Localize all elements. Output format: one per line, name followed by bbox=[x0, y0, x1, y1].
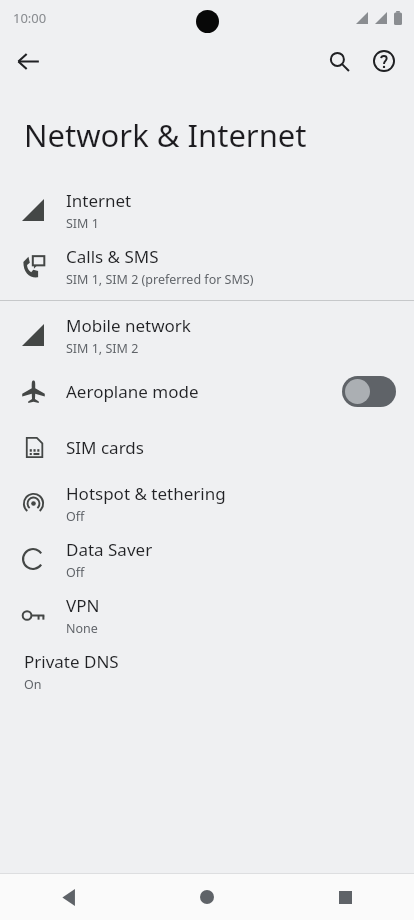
staticText: Calls & SMS bbox=[66, 245, 159, 268]
button[interactable]: Data Saver bbox=[0, 531, 414, 587]
staticText: SIM 1, SIM 2 (preferred for SMS) bbox=[66, 271, 254, 288]
staticText: On bbox=[24, 676, 42, 693]
button[interactable]: Calls & SMS bbox=[0, 238, 414, 294]
staticText: Mobile network bbox=[66, 314, 191, 337]
staticText: 10:00 bbox=[13, 9, 47, 27]
staticText: Off bbox=[66, 508, 85, 525]
staticText: Hotspot & tethering bbox=[66, 482, 226, 505]
button[interactable]: Back bbox=[0, 874, 138, 920]
button[interactable]: Hotspot & tethering bbox=[0, 475, 414, 531]
button[interactable]: Home bbox=[138, 874, 276, 920]
button[interactable]: Aeroplane mode toggle bbox=[342, 376, 396, 407]
staticText: Data Saver bbox=[66, 538, 153, 561]
staticText: Off bbox=[66, 564, 85, 581]
button[interactable]: Mobile network bbox=[0, 307, 414, 363]
button[interactable]: Help bbox=[362, 39, 406, 83]
staticText: VPN bbox=[66, 594, 100, 617]
button[interactable]: SIM cards bbox=[0, 419, 414, 475]
button[interactable]: VPN bbox=[0, 587, 414, 643]
staticText: SIM cards bbox=[66, 436, 144, 459]
button[interactable]: Back bbox=[6, 39, 50, 83]
button[interactable]: Private DNS bbox=[0, 643, 414, 699]
staticText: Internet bbox=[66, 189, 132, 212]
button[interactable]: Internet bbox=[0, 182, 414, 238]
staticText: Aeroplane mode bbox=[66, 380, 199, 403]
button[interactable]: Aeroplane mode bbox=[0, 363, 414, 419]
staticText: Private DNS bbox=[24, 650, 119, 673]
staticText: None bbox=[66, 620, 98, 637]
staticText: Network & Internet bbox=[24, 114, 307, 156]
button[interactable]: Recents bbox=[276, 874, 414, 920]
staticText: SIM 1, SIM 2 bbox=[66, 340, 139, 357]
button[interactable]: Search bbox=[317, 39, 361, 83]
staticText: SIM 1 bbox=[66, 215, 99, 232]
